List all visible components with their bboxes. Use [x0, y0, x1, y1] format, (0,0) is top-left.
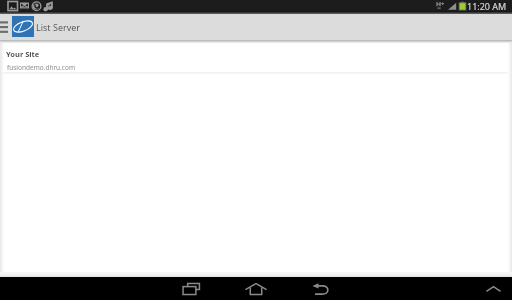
button[interactable]: Your Site: [0, 43, 512, 74]
staticText: List Server: [36, 21, 81, 33]
staticText: Your Site: [6, 49, 40, 59]
button[interactable]: Recents: [179, 277, 206, 300]
button[interactable]: Navigation drawer: [0, 14, 11, 40]
staticText: fusiondemo.dhru.com: [7, 63, 75, 72]
button[interactable]: Hide keyboard: [484, 277, 502, 300]
button[interactable]: Dhru Fusion: [12, 16, 34, 37]
button[interactable]: Home: [242, 277, 270, 300]
staticText: 11:20 AM: [467, 0, 507, 12]
button[interactable]: Back: [309, 277, 333, 300]
